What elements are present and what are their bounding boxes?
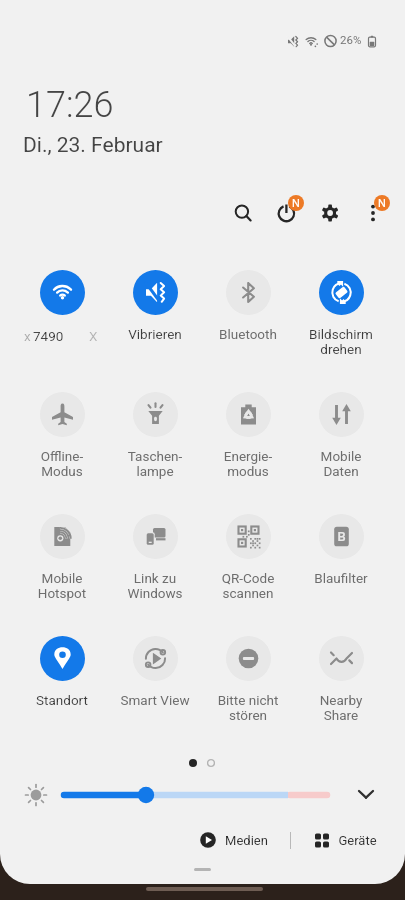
staticText: Smart View — [109, 692, 201, 708]
staticText: Taschen- lampe — [109, 448, 201, 479]
staticText: Mobile Hotspot — [16, 570, 108, 601]
button[interactable]: Medien — [200, 829, 268, 851]
button[interactable]: Taschen- lampe — [109, 392, 201, 484]
button[interactable]: QR-Code scannen — [202, 514, 294, 606]
staticText: Medien — [225, 833, 268, 848]
button[interactable]: Offline- Modus — [16, 392, 108, 484]
button[interactable]: Energie- modus — [202, 392, 294, 484]
staticText: 26% — [340, 33, 362, 46]
button[interactable]: Link zu Windows — [109, 514, 201, 606]
staticText: Bluetooth — [202, 326, 294, 342]
staticText: x — [24, 328, 31, 344]
staticText: X — [89, 328, 98, 344]
button[interactable] — [16, 270, 108, 362]
staticText: Offline- Modus — [16, 448, 108, 479]
staticText: N — [378, 197, 386, 210]
button[interactable]: B — [295, 514, 387, 606]
button[interactable]: Bildschirm drehen — [295, 270, 387, 362]
button[interactable]: Bluetooth — [202, 270, 294, 362]
staticText: 7490 — [33, 328, 64, 344]
staticText: Nearby Share — [295, 692, 387, 723]
button[interactable]: Geräte — [314, 829, 377, 851]
staticText: QR-Code scannen — [202, 570, 294, 601]
staticText: Blaufilter — [295, 570, 387, 586]
staticText: Mobile Daten — [295, 448, 387, 479]
staticText: N — [292, 197, 300, 210]
button[interactable]: Mehr Optionen — [365, 200, 381, 216]
button[interactable]: Vibrieren — [109, 270, 201, 362]
button[interactable]: Standort — [16, 636, 108, 728]
staticText: Di., 23. Februar — [23, 133, 163, 158]
button[interactable]: Mobile Hotspot — [16, 514, 108, 606]
button[interactable]: Smart View — [109, 636, 201, 728]
staticText: Bildschirm drehen — [295, 326, 387, 357]
staticText: B — [337, 529, 346, 544]
staticText: Geräte — [338, 833, 377, 848]
staticText: Link zu Windows — [109, 570, 201, 601]
button[interactable]: Ausschalten — [273, 200, 300, 227]
button[interactable]: Suchen — [228, 198, 256, 226]
staticText: 17:26 — [26, 84, 114, 126]
staticText: Bitte nicht stören — [202, 692, 294, 723]
staticText: Vibrieren — [109, 326, 201, 342]
staticText: Energie- modus — [202, 448, 294, 479]
button[interactable]: Einstellungen — [318, 201, 342, 225]
staticText: Standort — [16, 692, 108, 708]
button[interactable]: Bitte nicht stören — [202, 636, 294, 728]
button[interactable]: Mobile Daten — [295, 392, 387, 484]
button[interactable]: Nearby Share — [295, 636, 387, 728]
